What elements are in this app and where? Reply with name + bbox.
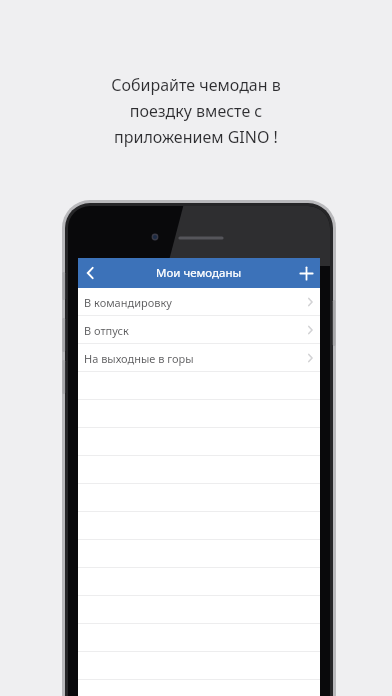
button[interactable]: В отпуск (78, 316, 320, 344)
button[interactable]: На выходные в горы (78, 344, 320, 372)
staticText: В командировку (84, 295, 172, 310)
button[interactable]: В командировку (78, 288, 320, 316)
staticText: Мои чемоданы (156, 265, 242, 281)
staticText: Собирайте чемодан в поездку вместе с при… (111, 74, 281, 148)
button[interactable]: Назад (78, 258, 104, 288)
staticText: В отпуск (84, 323, 129, 338)
button[interactable]: Добавить (292, 258, 320, 288)
staticText: На выходные в горы (84, 351, 194, 366)
